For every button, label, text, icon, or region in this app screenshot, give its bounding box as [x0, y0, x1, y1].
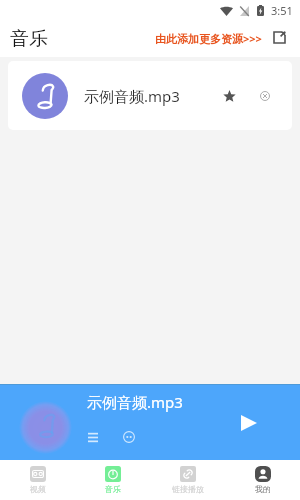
- staticText: 链接播放: [172, 484, 204, 494]
- staticText: 由此添加更多资源>>>: [155, 31, 262, 46]
- button[interactable]: Favorite: [216, 83, 242, 109]
- button[interactable]: 由此添加更多资源>>>: [155, 31, 262, 46]
- button[interactable]: 视频: [0, 460, 75, 500]
- staticText: 音乐: [10, 27, 48, 51]
- button[interactable]: Open: [271, 29, 287, 45]
- staticText: 音乐: [105, 484, 121, 494]
- staticText: 示例音频.mp3: [87, 392, 183, 412]
- staticText: 视频: [30, 484, 46, 494]
- button[interactable]: 示例音频.mp3: [8, 61, 292, 130]
- button[interactable]: 音乐: [75, 460, 150, 500]
- button[interactable]: Playlist: [83, 427, 103, 447]
- staticText: 示例音频.mp3: [84, 86, 180, 106]
- staticText: 我的: [255, 484, 271, 494]
- button[interactable]: Playback speed: [119, 427, 139, 447]
- staticText: 3:51: [271, 3, 293, 18]
- button[interactable]: Remove: [251, 82, 278, 109]
- button[interactable]: 链接播放: [150, 460, 225, 500]
- button[interactable]: Play: [238, 412, 260, 434]
- button[interactable]: 我的: [225, 460, 300, 500]
